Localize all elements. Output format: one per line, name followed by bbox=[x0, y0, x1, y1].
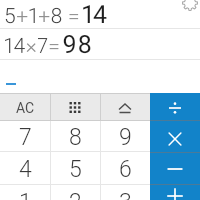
button[interactable]: 7 bbox=[0, 121, 50, 151]
staticText: 3 bbox=[119, 189, 132, 200]
button[interactable]: 8 bbox=[50, 121, 100, 151]
button[interactable]: 2 bbox=[50, 185, 100, 200]
staticText: 1 bbox=[19, 189, 32, 200]
button[interactable]: AC bbox=[0, 94, 50, 120]
button[interactable]: 4 bbox=[0, 152, 50, 184]
button[interactable] bbox=[100, 94, 150, 120]
button[interactable]: 3 bbox=[100, 185, 150, 200]
staticText: 2 bbox=[69, 189, 82, 200]
button[interactable]: 6 bbox=[100, 152, 150, 184]
staticText: 7 bbox=[19, 124, 32, 151]
button[interactable]: 9 bbox=[100, 121, 150, 151]
staticText: 9 bbox=[119, 124, 132, 151]
button[interactable] bbox=[180, 0, 200, 14]
staticText: 8 bbox=[69, 124, 82, 151]
button[interactable] bbox=[150, 185, 200, 200]
staticText: 5 bbox=[69, 156, 82, 183]
staticText: 14×7= 98 bbox=[4, 30, 93, 59]
button[interactable]: 5+1+8 = 14 bbox=[0, 0, 200, 28]
button[interactable] bbox=[50, 94, 100, 120]
staticText: 5+1+8 = 14 bbox=[4, 0, 107, 28]
staticText: 6 bbox=[119, 156, 132, 183]
button[interactable]: 14×7= 98 bbox=[0, 29, 200, 59]
staticText: AC bbox=[16, 100, 35, 116]
button[interactable] bbox=[150, 121, 200, 152]
button[interactable]: 5 bbox=[50, 152, 100, 184]
button[interactable]: 1 bbox=[0, 185, 50, 200]
staticText: 4 bbox=[19, 156, 32, 183]
button[interactable] bbox=[150, 153, 200, 184]
button[interactable] bbox=[150, 93, 200, 120]
